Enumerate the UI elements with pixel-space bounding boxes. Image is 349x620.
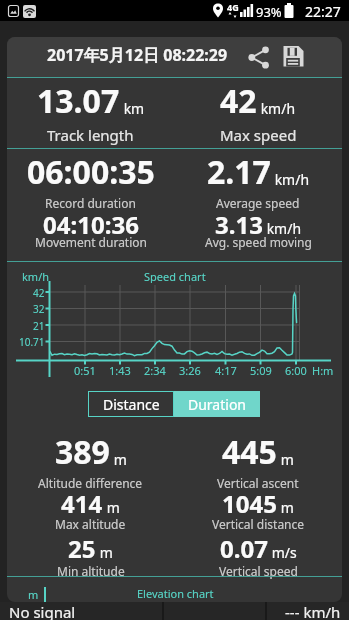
staticText: 2017年5月12日 08:22:29 [47,44,228,66]
staticText: km/h [271,170,310,189]
staticText: Vertical speed [219,563,298,579]
staticText: 3.13 [215,208,263,241]
staticText: 0:51 [74,363,96,377]
staticText: m [277,498,294,517]
staticText: 04:10:36 [43,208,139,241]
staticText: 93% [256,3,282,18]
staticText: 42 [33,286,45,299]
staticText: m/s [268,543,297,562]
staticText: Speed chart [144,269,206,283]
staticText: 2:34 [144,363,166,377]
staticText: 25 [68,532,96,565]
staticText: m [103,498,120,517]
staticText: No signal [9,602,76,620]
staticText: 13.07 [37,79,120,123]
staticText: m [277,450,294,469]
button[interactable]: No signal [0,602,162,620]
button[interactable] [279,43,307,71]
staticText: 2.17 [207,150,271,194]
staticText: 32 [33,302,45,315]
staticText: Distance [103,395,160,414]
staticText: 1045 [222,487,277,520]
staticText: Min altitude [57,563,125,579]
staticText: 5:09 [250,363,272,377]
button[interactable]: Duration [174,391,260,417]
staticText: Movement duration [35,234,147,250]
staticText: Max speed [220,125,297,145]
staticText: km/h [257,99,296,118]
staticText: m [28,587,39,601]
button[interactable] [245,43,274,71]
staticText: Vertical distance [212,516,305,532]
staticText: Altitude difference [38,475,143,491]
staticText: Duration [188,395,247,414]
staticText: Max altitude [55,516,126,532]
staticText: 445 [222,430,277,474]
staticText: Avg. speed moving [205,234,312,250]
button[interactable]: --- km/h [267,602,349,620]
staticText: 42 [220,79,257,123]
staticText: m [110,450,127,469]
staticText: 22:27 [305,2,341,19]
staticText: 4:17 [215,363,237,377]
staticText: H:m [312,363,334,377]
staticText: 6:00 [285,363,307,377]
staticText: Record duration [45,195,136,211]
staticText: 1:43 [109,363,131,377]
staticText: 06:00:35 [27,150,155,194]
staticText: Elevation chart [137,586,214,600]
staticText: Average speed [216,195,300,211]
staticText: 10.71 [19,335,45,348]
staticText: km [120,99,145,118]
staticText: km/h [22,269,50,283]
staticText: --- km/h [285,602,341,620]
staticText: m [96,543,113,562]
staticText: 3:26 [179,363,201,377]
staticText: Track length [47,125,134,145]
staticText: 0.07 [220,532,268,565]
staticText: km/h [263,219,302,238]
staticText: 414 [61,487,103,520]
staticText: 4G [227,1,239,12]
staticText: Vertical ascent [217,475,299,491]
staticText: 21 [33,319,45,332]
staticText: 389 [55,430,110,474]
button[interactable]: Distance [88,391,174,417]
